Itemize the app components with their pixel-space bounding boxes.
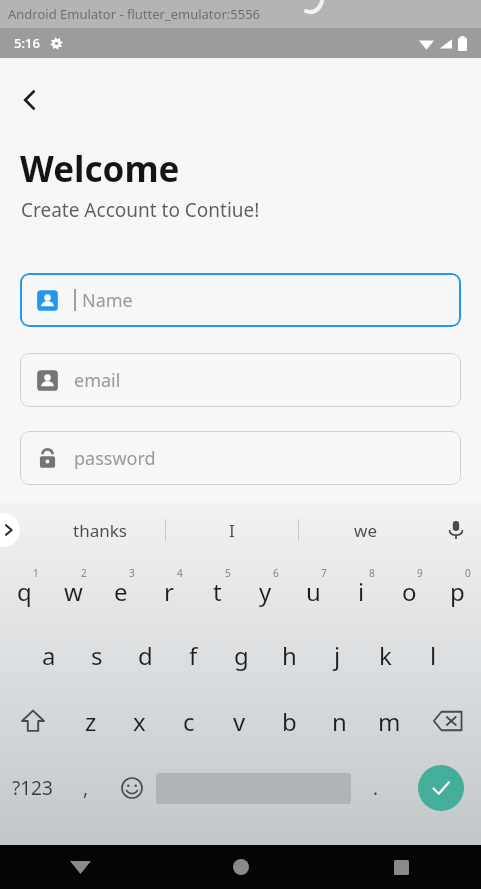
staticText: 2 (81, 566, 87, 580)
staticText: s (91, 639, 103, 672)
button[interactable]: v (214, 688, 264, 754)
button[interactable]: e (97, 560, 145, 622)
button[interactable]: m (364, 688, 414, 754)
staticText: c (183, 705, 195, 738)
button[interactable]: p (433, 560, 481, 622)
staticText: email (74, 368, 121, 393)
button[interactable]: , (64, 754, 107, 822)
button[interactable]: t (193, 560, 241, 622)
button[interactable]: n (314, 688, 364, 754)
staticText: m (378, 705, 401, 738)
button[interactable]: o (385, 560, 433, 622)
staticText: thanks (73, 519, 127, 542)
button[interactable]: i (337, 560, 385, 622)
button[interactable]: ?123 (0, 754, 64, 822)
button[interactable]: we (299, 506, 431, 554)
button[interactable]: password (20, 431, 461, 485)
staticText: Name (82, 288, 133, 313)
button[interactable]: Home (161, 845, 321, 889)
staticText: 8 (369, 566, 375, 580)
button[interactable]: Recent apps (321, 845, 481, 889)
button[interactable]: Space (156, 754, 351, 822)
staticText: ?123 (12, 775, 53, 801)
staticText: password (74, 446, 156, 471)
button[interactable]: z (66, 688, 115, 754)
staticText: 6 (273, 566, 279, 580)
button[interactable]: x (115, 688, 164, 754)
button[interactable]: f (169, 622, 217, 688)
button[interactable]: r (145, 560, 193, 622)
staticText: f (189, 639, 198, 672)
button[interactable]: w (49, 560, 97, 622)
button[interactable]: Back (0, 845, 161, 889)
staticText: o (402, 575, 417, 608)
staticText: t (213, 575, 222, 608)
staticText: i (358, 575, 365, 608)
staticText: w (64, 575, 83, 608)
button[interactable]: y (241, 560, 289, 622)
button[interactable]: Emoji (107, 754, 156, 822)
button[interactable]: k (361, 622, 409, 688)
button[interactable]: More suggestions (0, 513, 20, 547)
staticText: 4 (177, 566, 183, 580)
staticText: Welcome (20, 145, 180, 193)
staticText: h (282, 639, 297, 672)
button[interactable]: Voice input (431, 506, 481, 554)
staticText: 9 (417, 566, 423, 580)
staticText: u (306, 575, 321, 608)
button[interactable]: s (73, 622, 121, 688)
button[interactable]: j (313, 622, 361, 688)
button[interactable]: h (265, 622, 313, 688)
button[interactable]: Backspace (414, 688, 481, 754)
staticText: j (334, 639, 341, 672)
staticText: p (450, 575, 465, 608)
button[interactable]: I (166, 506, 298, 554)
staticText: I (229, 519, 235, 542)
staticText: 0 (465, 566, 471, 580)
staticText: e (114, 575, 128, 608)
button[interactable]: l (409, 622, 457, 688)
staticText: . (373, 775, 379, 801)
staticText: , (83, 775, 89, 801)
button[interactable]: email (20, 353, 461, 407)
staticText: r (164, 575, 174, 608)
button[interactable]: u (289, 560, 337, 622)
button[interactable]: d (121, 622, 169, 688)
staticText: 5 (225, 566, 231, 580)
staticText: Android Emulator - flutter_emulator:5556 (8, 5, 261, 23)
button[interactable]: b (264, 688, 314, 754)
staticText: d (138, 639, 153, 672)
button[interactable]: a (25, 622, 73, 688)
staticText: y (259, 575, 272, 608)
staticText: l (430, 639, 437, 672)
staticText: Create Account to Contiue! (21, 197, 260, 223)
staticText: n (332, 705, 347, 738)
button[interactable]: . (351, 754, 400, 822)
staticText: z (85, 705, 97, 738)
button[interactable]: q (0, 560, 49, 622)
button[interactable]: c (164, 688, 214, 754)
button[interactable]: Enter (418, 765, 464, 811)
staticText: 3 (129, 566, 135, 580)
staticText: k (379, 639, 392, 672)
staticText: v (233, 705, 246, 738)
button[interactable]: g (217, 622, 265, 688)
staticText: 5:16 (14, 34, 40, 52)
staticText: g (234, 639, 249, 672)
button[interactable]: Back (8, 78, 52, 122)
staticText: 1 (33, 566, 39, 580)
button[interactable]: Name (20, 273, 461, 327)
staticText: we (354, 519, 377, 542)
staticText: b (282, 705, 297, 738)
button[interactable]: Shift (0, 688, 66, 754)
staticText: a (42, 639, 56, 672)
staticText: q (17, 575, 32, 608)
staticText: x (133, 705, 146, 738)
button[interactable]: thanks (34, 506, 165, 554)
staticText: 7 (321, 566, 327, 580)
